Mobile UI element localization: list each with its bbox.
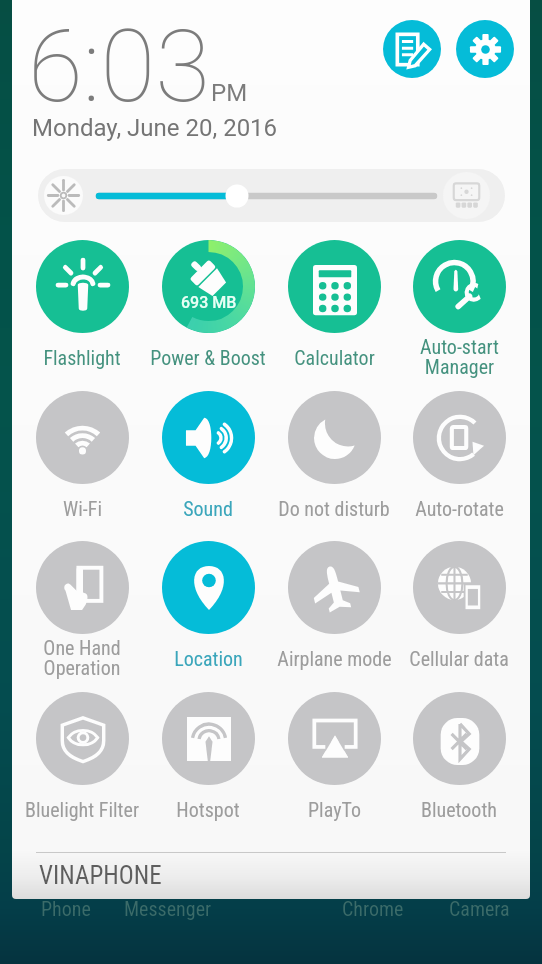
staticText: Bluelight Filter <box>25 798 139 821</box>
button[interactable]: Do not disturb <box>272 391 396 520</box>
staticText: Auto-start Manager <box>420 335 499 379</box>
button[interactable]: Bluetooth <box>397 692 521 821</box>
staticText: Sound <box>183 497 233 520</box>
staticText: VINAPHONE <box>39 861 162 890</box>
button[interactable]: Calculator <box>272 240 396 369</box>
staticText: 693 MB <box>181 293 237 312</box>
button[interactable]: 693 MB <box>146 240 270 369</box>
staticText: Monday, June 20, 2016 <box>32 114 278 142</box>
button[interactable]: PlayTo <box>272 692 396 821</box>
staticText: PM <box>211 79 248 107</box>
button[interactable]: Auto-start Manager <box>397 240 521 390</box>
button[interactable]: Wi-Fi <box>20 391 144 520</box>
staticText: Airplane mode <box>277 647 392 670</box>
button[interactable]: Auto brightness <box>443 172 490 219</box>
button[interactable]: Cellular data <box>397 541 521 670</box>
staticText: Chrome <box>342 897 404 920</box>
button[interactable]: Location <box>146 541 270 670</box>
button[interactable]: Quick notes <box>383 20 441 78</box>
staticText: Phone <box>41 897 91 920</box>
button[interactable]: Bluelight Filter <box>20 692 144 821</box>
staticText: Auto-rotate <box>415 497 504 520</box>
button[interactable]: Hotspot <box>146 692 270 821</box>
button[interactable]: Settings <box>456 20 514 78</box>
button[interactable]: Auto-rotate <box>397 391 521 520</box>
staticText: Hotspot <box>176 798 240 821</box>
staticText: Flashlight <box>43 346 121 369</box>
staticText: 6:03 <box>28 8 210 125</box>
staticText: Power & Boost <box>150 346 266 369</box>
staticText: One Hand Operation <box>43 636 121 680</box>
button[interactable]: One Hand Operation <box>20 541 144 691</box>
staticText: Calculator <box>294 346 375 369</box>
staticText: Cellular data <box>409 647 509 670</box>
button[interactable]: Sound <box>146 391 270 520</box>
staticText: Location <box>174 647 243 670</box>
staticText: Wi-Fi <box>63 497 102 520</box>
staticText: Camera <box>449 897 510 920</box>
staticText: PlayTo <box>308 798 361 821</box>
staticText: Messenger <box>124 897 212 920</box>
button[interactable]: Flashlight <box>20 240 144 369</box>
staticText: Bluetooth <box>421 798 497 821</box>
button[interactable]: Brightness <box>44 176 83 215</box>
staticText: Do not disturb <box>278 497 390 520</box>
button[interactable]: Airplane mode <box>272 541 396 670</box>
